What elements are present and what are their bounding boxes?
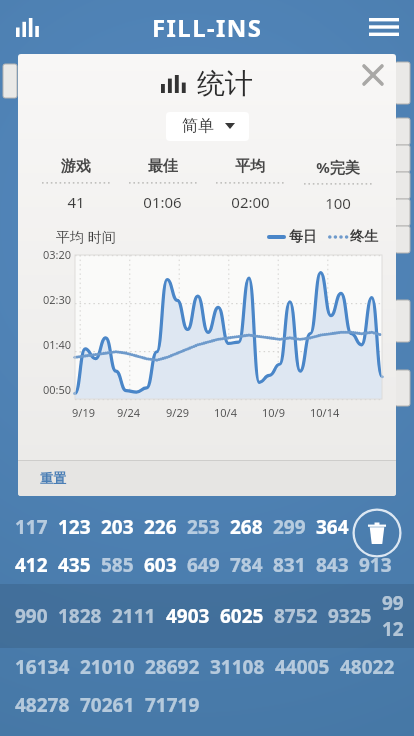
staticText: 游戏 [61, 157, 91, 176]
staticText: 8752 [274, 603, 318, 629]
staticText: 10/4 [214, 405, 237, 420]
staticText: 02:30 [43, 292, 72, 307]
button[interactable]: 简单 [166, 112, 249, 141]
button[interactable]: 585 [96, 550, 139, 580]
staticText: 9325 [328, 603, 372, 629]
staticText: 02:00 [231, 192, 270, 212]
button[interactable]: 9912 [377, 588, 414, 644]
staticText: 412 [15, 552, 48, 578]
staticText: 1828 [58, 603, 102, 629]
staticText: 41 [67, 192, 85, 212]
staticText: %完美 [316, 157, 360, 177]
staticText: 253 [187, 514, 220, 540]
staticText: 平均 [235, 157, 265, 176]
button[interactable]: 重置 [18, 462, 88, 494]
button[interactable]: 8752 [269, 601, 323, 631]
staticText: 9912 [382, 590, 409, 642]
button[interactable]: 784 [225, 550, 268, 580]
staticText: 00:50 [43, 382, 72, 397]
staticText: 585 [101, 552, 134, 578]
staticText: 48278 [15, 692, 70, 718]
staticText: 299 [273, 514, 306, 540]
staticText: 01:40 [43, 337, 72, 352]
staticText: 10/14 [310, 405, 340, 420]
button[interactable]: 71719 [140, 690, 205, 720]
button[interactable]: 831 [268, 550, 311, 580]
staticText: 226 [144, 514, 177, 540]
staticText: 重置 [40, 470, 66, 486]
staticText: 603 [144, 552, 177, 578]
button[interactable]: 364 [311, 512, 354, 542]
staticText: 每日 [289, 228, 317, 246]
button[interactable]: 2111 [107, 601, 161, 631]
staticText: 843 [316, 552, 349, 578]
staticText: 01:06 [143, 192, 182, 212]
button[interactable]: 435 [53, 550, 96, 580]
button[interactable]: 299 [268, 512, 311, 542]
staticText: 990 [15, 603, 48, 629]
button[interactable]: 603 [139, 550, 182, 580]
staticText: 9/19 [72, 405, 95, 420]
button[interactable]: Statistics [6, 5, 50, 49]
button[interactable]: 6025 [215, 601, 269, 631]
button[interactable]: 4903 [161, 601, 215, 631]
staticText: 784 [230, 552, 263, 578]
staticText: 4903 [166, 603, 210, 629]
staticText: 最佳 [148, 157, 178, 176]
button[interactable]: 990 [10, 601, 53, 631]
staticText: 435 [58, 552, 91, 578]
staticText: 364 [316, 514, 349, 540]
button[interactable]: Close [356, 58, 390, 92]
staticText: 31108 [210, 654, 265, 680]
staticText: 平均 时间 [56, 227, 116, 246]
staticText: 9/29 [166, 405, 189, 420]
staticText: 统计 [197, 66, 253, 101]
button[interactable]: Menu [362, 5, 406, 49]
staticText: 44005 [275, 654, 330, 680]
button[interactable]: 70261 [75, 690, 140, 720]
staticText: 831 [273, 552, 306, 578]
staticText: FILL-INS [152, 11, 263, 44]
staticText: 21010 [80, 654, 135, 680]
staticText: 117 [15, 514, 48, 540]
button[interactable]: 1828 [53, 601, 107, 631]
staticText: 100 [325, 193, 351, 213]
staticText: 16134 [15, 654, 70, 680]
staticText: 913 [359, 552, 392, 578]
staticText: 268 [230, 514, 263, 540]
button[interactable]: 48278 [10, 690, 75, 720]
button[interactable]: 9325 [323, 601, 377, 631]
staticText: 203 [101, 514, 134, 540]
button[interactable]: 843 [311, 550, 354, 580]
staticText: 70261 [80, 692, 135, 718]
button[interactable]: 412 [10, 550, 53, 580]
button[interactable]: 649 [182, 550, 225, 580]
staticText: 9/24 [117, 405, 140, 420]
staticText: 6025 [220, 603, 264, 629]
button[interactable]: 21010 [75, 652, 140, 682]
staticText: 71719 [145, 692, 200, 718]
staticText: 03:20 [43, 247, 72, 262]
button[interactable]: 44005 [270, 652, 335, 682]
button[interactable]: 253 [182, 512, 225, 542]
button[interactable]: 28692 [140, 652, 205, 682]
button[interactable]: 123 [53, 512, 96, 542]
staticText: 2111 [112, 603, 156, 629]
button[interactable]: 31108 [205, 652, 270, 682]
staticText: 649 [187, 552, 220, 578]
staticText: 123 [58, 514, 91, 540]
staticText: 10/9 [262, 405, 285, 420]
button[interactable]: 203 [96, 512, 139, 542]
button[interactable]: 268 [225, 512, 268, 542]
button[interactable]: 117 [10, 512, 53, 542]
staticText: 48022 [340, 654, 395, 680]
button[interactable]: Delete history [351, 507, 403, 559]
staticText: 28692 [145, 654, 200, 680]
button[interactable]: 48022 [335, 652, 400, 682]
button[interactable]: 913 [354, 550, 397, 580]
staticText: 终生 [350, 228, 378, 246]
button[interactable]: 226 [139, 512, 182, 542]
staticText: 简单 [182, 116, 214, 136]
button[interactable]: 16134 [10, 652, 75, 682]
